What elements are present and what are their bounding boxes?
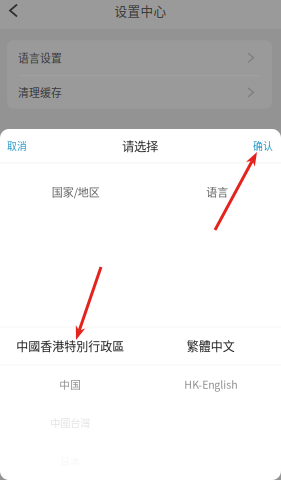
staticText: 语言设置 (18, 50, 62, 66)
button[interactable]: 中國香港特別行政區 (0, 327, 140, 365)
staticText: 语言 (206, 184, 228, 200)
button[interactable]: 繁體中文 (140, 327, 281, 365)
button[interactable]: HK-English (140, 365, 281, 403)
staticText: 清理缓存 (18, 85, 62, 100)
staticText: 中國台灣 (50, 415, 90, 430)
button[interactable]: 取消 (0, 129, 36, 162)
button[interactable]: 语言设置 (7, 40, 272, 76)
button[interactable]: 中國台灣 (0, 403, 140, 442)
staticText: 确认 (253, 139, 273, 153)
staticText: 繁體中文 (187, 337, 235, 355)
button[interactable]: 确认 (244, 129, 281, 162)
staticText: 中國香港特別行政區 (16, 337, 124, 355)
staticText: 请选择 (122, 137, 158, 155)
staticText: 中国 (59, 377, 81, 392)
button[interactable]: 中国 (0, 365, 140, 403)
staticText: 取消 (7, 139, 27, 153)
button[interactable]: Back (0, 0, 27, 23)
button[interactable] (140, 442, 281, 480)
button[interactable]: 日本 (0, 442, 140, 480)
staticText: HK-English (184, 377, 237, 392)
staticText: 设置中心 (114, 1, 166, 20)
staticText: 国家/地区 (52, 184, 100, 200)
button[interactable]: 清理缓存 (7, 76, 272, 109)
